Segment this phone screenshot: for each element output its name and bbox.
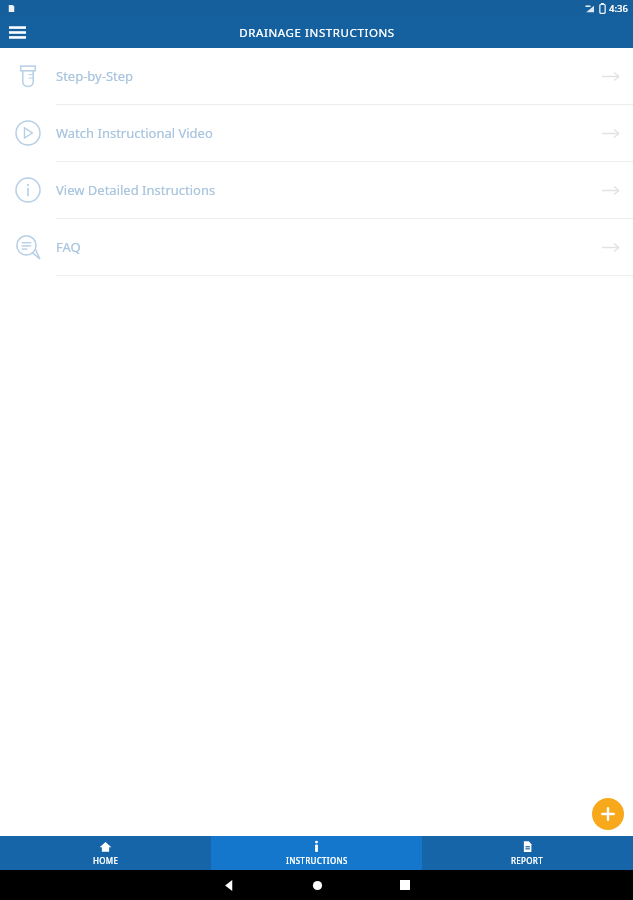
button[interactable]: Back: [207, 870, 251, 900]
button[interactable]: Watch Instructional Video: [0, 105, 633, 162]
staticText: FAQ: [56, 238, 81, 256]
staticText: DRAINAGE INSTRUCTIONS: [239, 25, 395, 41]
staticText: View Detailed Instructions: [56, 181, 216, 199]
staticText: REPORT: [511, 855, 544, 866]
button[interactable]: Step-by-Step: [0, 48, 633, 105]
button[interactable]: Add: [592, 798, 624, 830]
button[interactable]: FAQ: [0, 219, 633, 276]
staticText: INSTRUCTIONS: [286, 855, 348, 866]
staticText: HOME: [93, 855, 119, 866]
staticText: Step-by-Step: [56, 67, 134, 85]
button[interactable]: HOME: [0, 836, 211, 870]
button[interactable]: Open navigation menu: [0, 17, 34, 48]
staticText: Watch Instructional Video: [56, 124, 213, 142]
button[interactable]: Recent apps: [383, 870, 427, 900]
button[interactable]: INSTRUCTIONS: [211, 836, 422, 870]
button[interactable]: REPORT: [422, 836, 633, 870]
button[interactable]: View Detailed Instructions: [0, 162, 633, 219]
button[interactable]: Home: [295, 870, 339, 900]
staticText: 4:36: [609, 2, 628, 15]
